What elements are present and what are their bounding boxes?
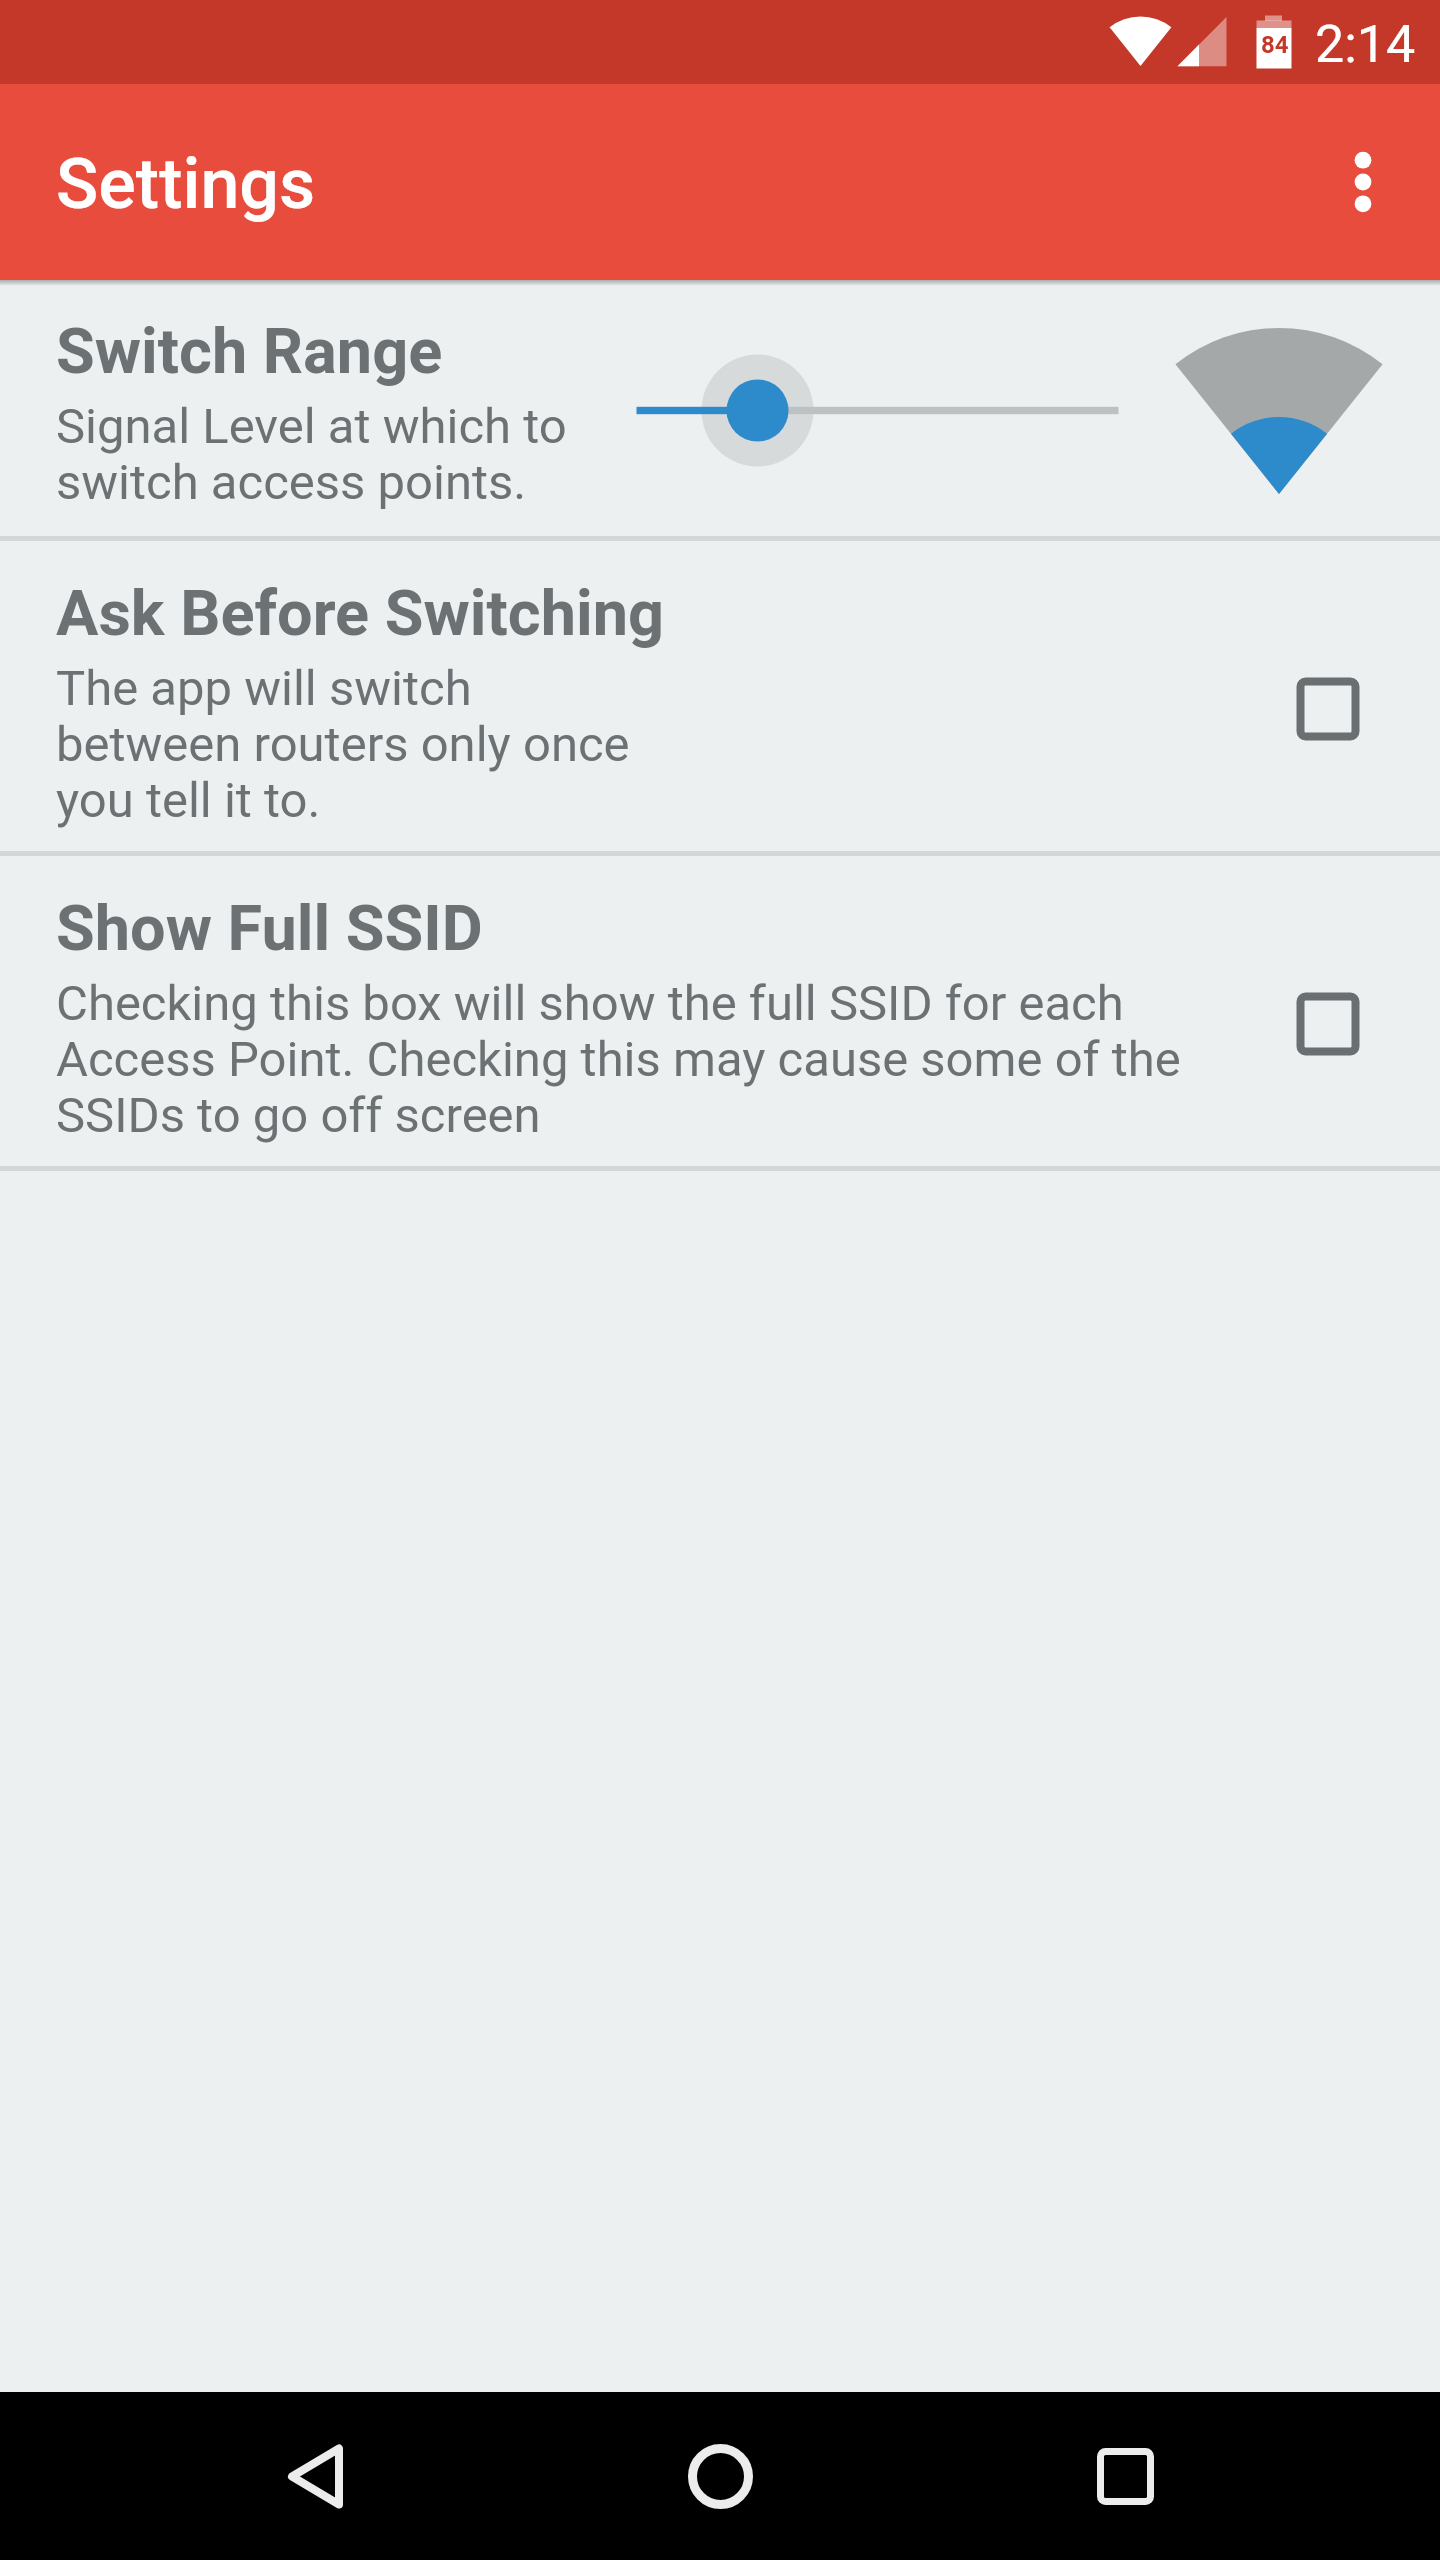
button[interactable]: Ask Before Switching <box>0 542 1440 851</box>
button[interactable]: Recent apps <box>1065 2416 1185 2536</box>
staticText: 84 <box>1261 31 1289 59</box>
button[interactable]: More options <box>1298 117 1428 247</box>
staticText: Signal Level at which to switch access p… <box>56 399 567 511</box>
button[interactable]: Home <box>660 2416 780 2536</box>
staticText: 2:14 <box>1315 14 1416 75</box>
staticText: Switch Range <box>56 315 443 389</box>
button[interactable]: Checkbox <box>1263 959 1393 1089</box>
button[interactable]: Switch Range <box>0 280 1440 536</box>
button[interactable]: Checkbox <box>1263 644 1393 774</box>
staticText: Show Full SSID <box>56 892 483 966</box>
staticText: Checking this box will show the full SSI… <box>56 976 1181 1144</box>
button[interactable]: Switch range slider <box>600 300 1440 520</box>
button[interactable]: Show Full SSID <box>0 857 1440 1166</box>
staticText: Ask Before Switching <box>56 577 664 651</box>
staticText: Settings <box>56 143 316 225</box>
staticText: The app will switch between routers only… <box>56 661 630 829</box>
button[interactable]: Back <box>255 2416 375 2536</box>
